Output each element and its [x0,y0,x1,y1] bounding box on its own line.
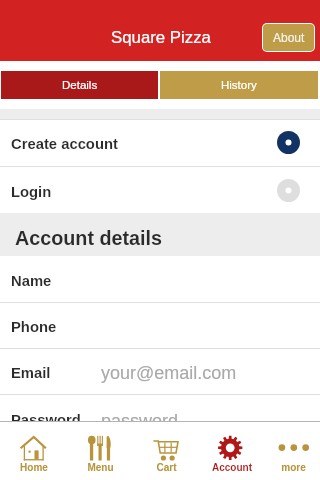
staticText: Email [11,365,51,382]
staticText: Login [11,184,52,201]
button[interactable]: more [265,422,320,480]
button[interactable]: Home [1,422,67,480]
button[interactable]: Details [1,71,158,99]
button[interactable]: About [263,24,314,51]
button[interactable]: History [160,71,318,99]
staticText: more [281,462,306,473]
staticText: Create account [11,136,118,153]
staticText: Cart [156,462,177,473]
staticText: About [273,31,305,44]
button[interactable]: Login [0,167,320,213]
button[interactable]: Menu [67,422,133,480]
staticText: Name [11,273,52,290]
staticText: Account [212,462,252,473]
staticText: Password [11,412,81,429]
staticText: Phone [11,319,57,336]
button[interactable]: Cart [133,422,199,480]
staticText: Menu [87,462,114,473]
staticText: Details [62,79,98,92]
staticText: Home [20,462,48,473]
staticText: Account details [15,227,163,249]
button[interactable]: Name [0,256,320,302]
staticText: History [221,79,257,92]
button[interactable]: Phone [0,302,320,348]
button[interactable]: Password [0,394,320,443]
staticText: Square Pizza [111,28,211,47]
button[interactable]: Create account [0,119,320,166]
button[interactable]: Account [199,422,265,480]
button[interactable]: Email [0,348,320,394]
staticText: your@email.com [101,363,237,383]
staticText: password [101,411,179,431]
